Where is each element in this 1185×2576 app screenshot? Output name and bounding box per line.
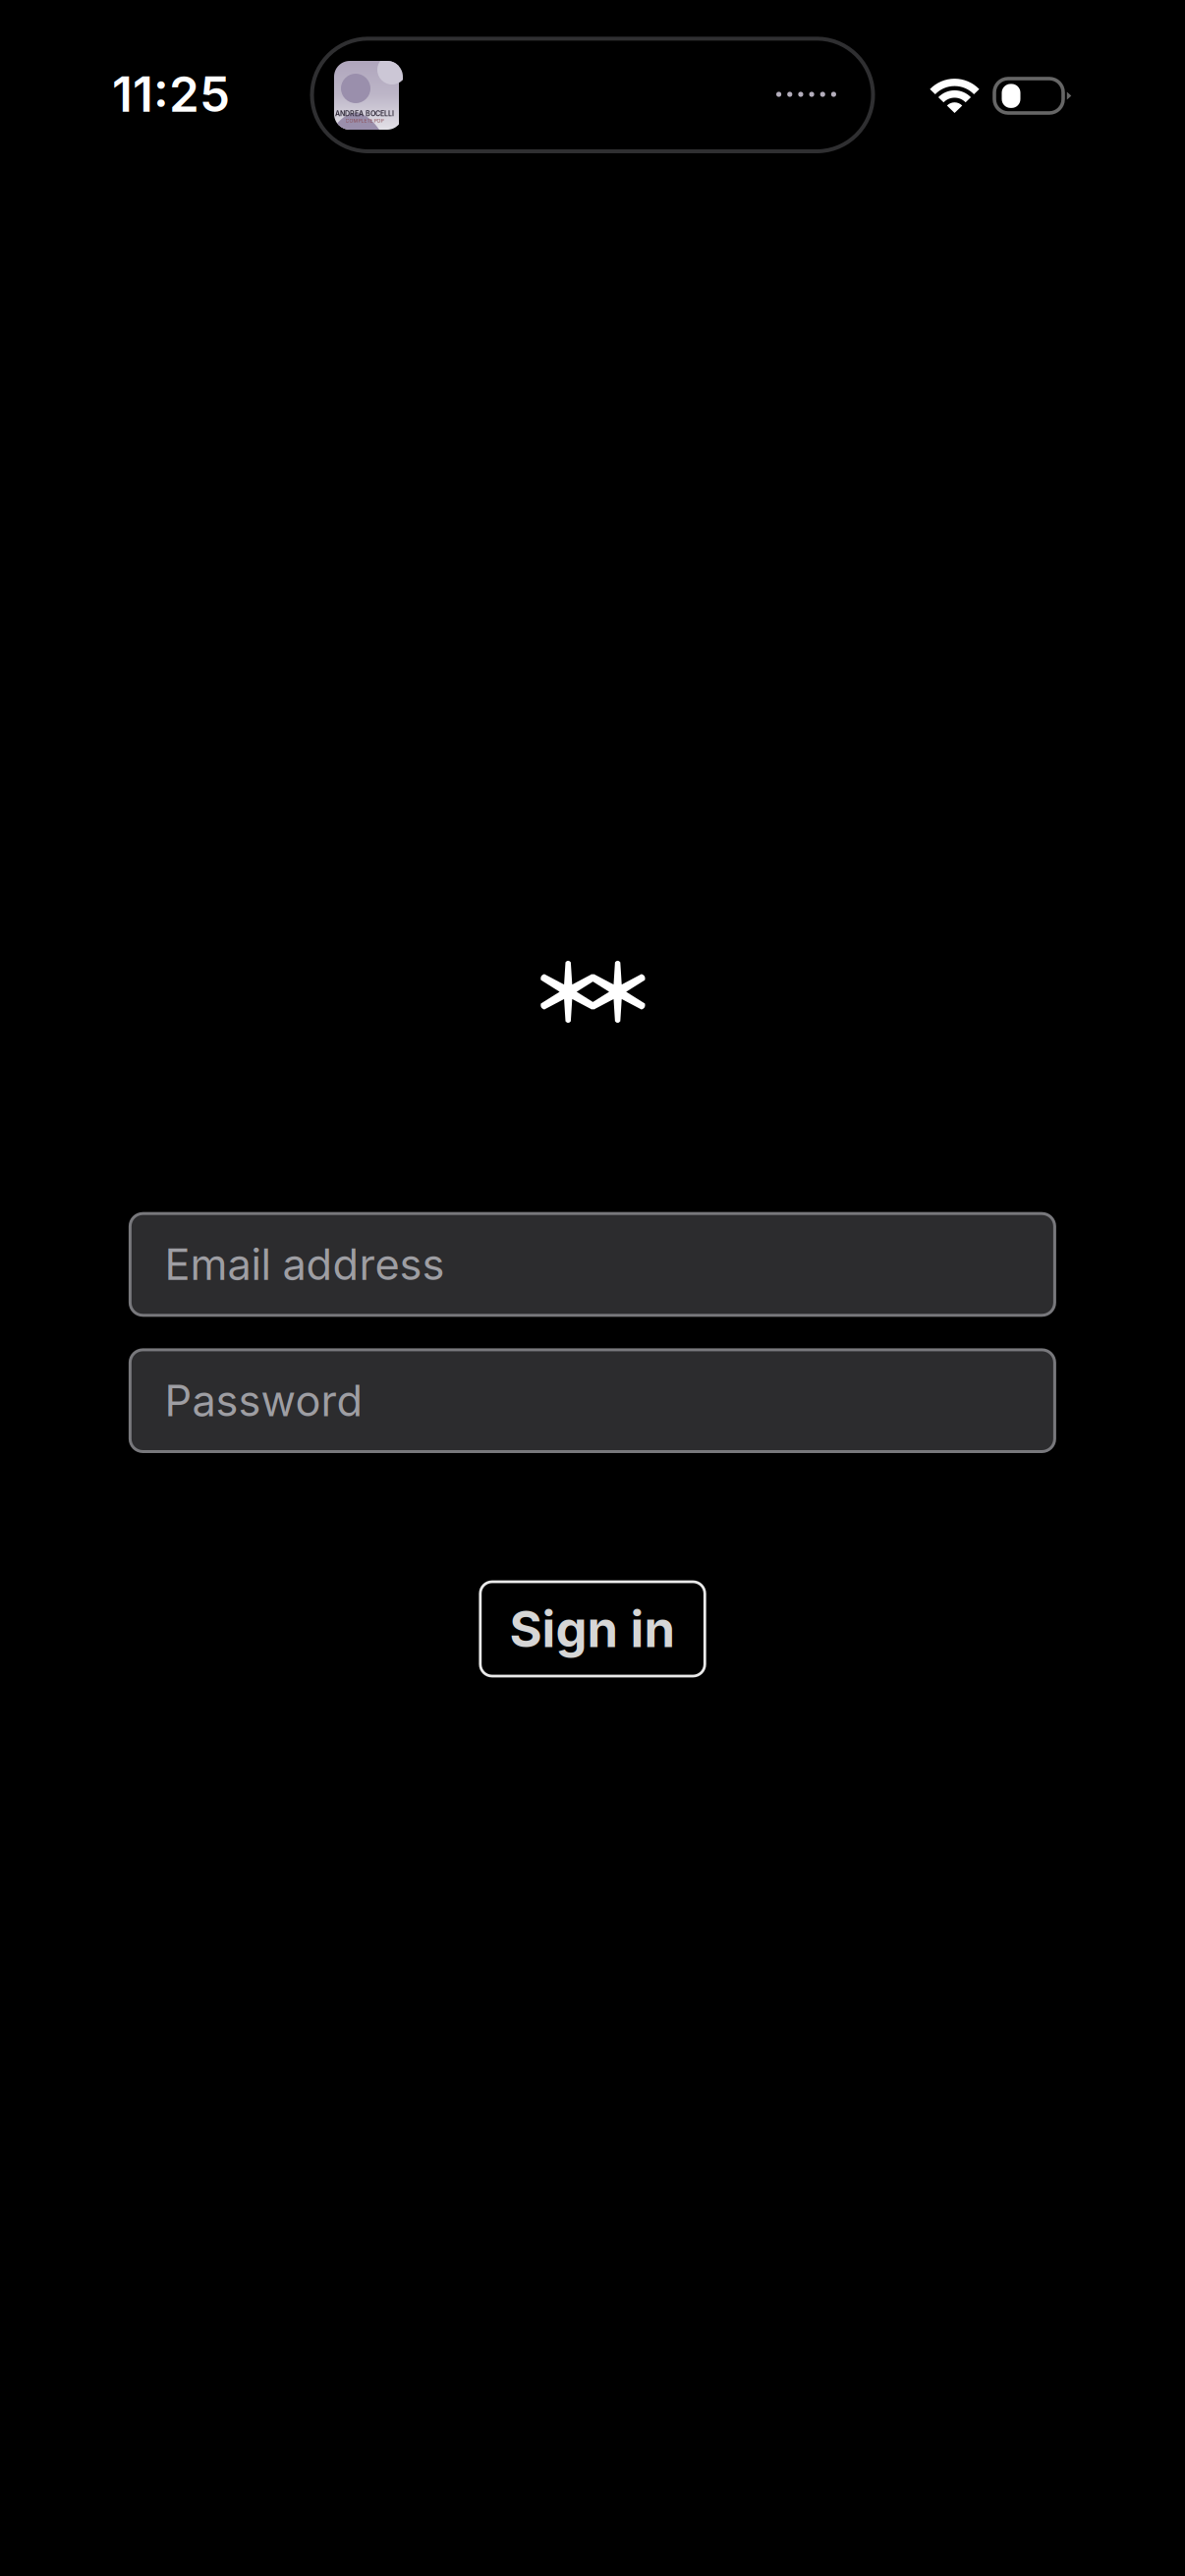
button[interactable]: Password [130, 1350, 1055, 1452]
staticText: Sign in [509, 1599, 676, 1659]
staticText: ANDREA BOCELLI [335, 109, 394, 118]
staticText: Email address [164, 1239, 445, 1290]
staticText: COMPLETE POP [345, 118, 384, 124]
staticText: 11:25 [112, 65, 230, 123]
button[interactable]: Email address [130, 1214, 1055, 1315]
button[interactable]: Sign in [480, 1582, 705, 1676]
staticText: Password [164, 1375, 363, 1426]
